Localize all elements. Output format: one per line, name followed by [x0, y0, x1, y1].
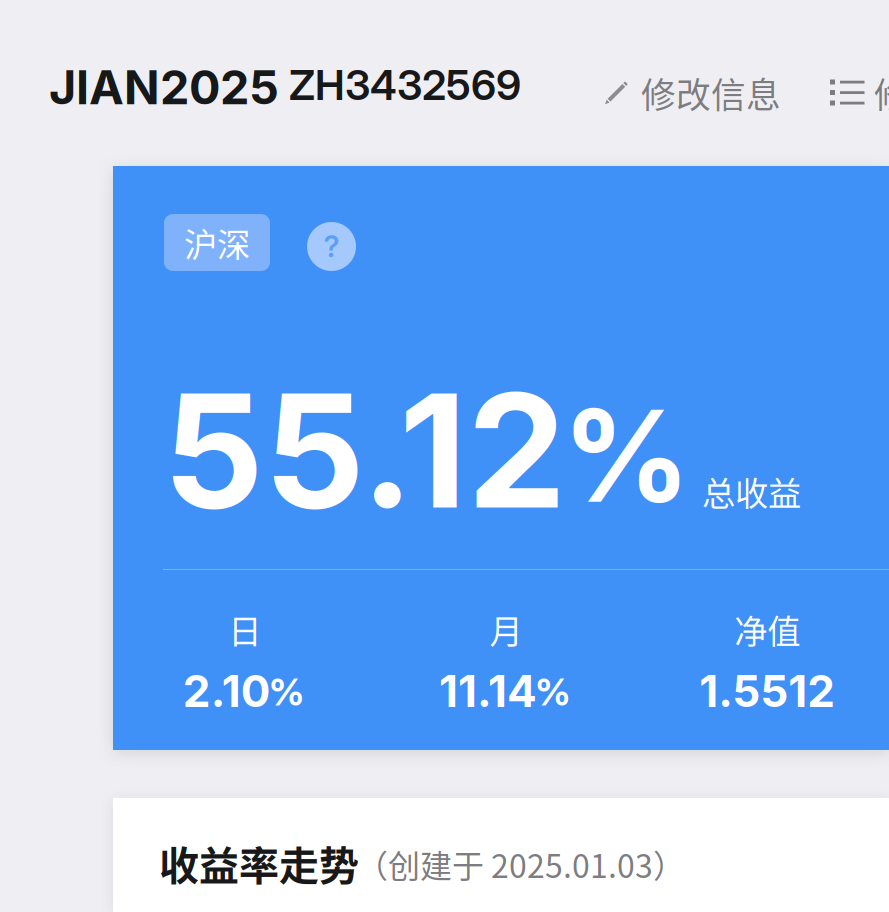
- button[interactable]: Help: [307, 222, 356, 271]
- staticText: 日: [228, 605, 261, 653]
- staticText: 1.5512: [699, 664, 835, 717]
- staticText: （创建于 2025.01.03）: [356, 841, 685, 887]
- staticText: 收益率走势: [159, 834, 359, 892]
- staticText: 55.12: [163, 355, 566, 545]
- staticText: 修改信息: [874, 68, 889, 118]
- staticText: 净值: [734, 605, 800, 653]
- button[interactable]: 修改信息: [830, 67, 889, 119]
- staticText: JIAN2025: [49, 59, 279, 115]
- staticText: %: [535, 669, 571, 714]
- staticText: 总收益: [702, 467, 801, 515]
- staticText: ?: [323, 229, 339, 264]
- staticText: 修改信息: [641, 68, 781, 118]
- staticText: 2.10: [183, 664, 271, 717]
- staticText: %: [269, 669, 305, 714]
- staticText: %: [562, 379, 691, 532]
- staticText: 11.14: [439, 664, 537, 717]
- staticText: 月: [489, 605, 522, 653]
- button[interactable]: 修改信息: [602, 67, 792, 119]
- staticText: ZH3432569: [289, 60, 521, 110]
- staticText: 沪深: [184, 218, 250, 267]
